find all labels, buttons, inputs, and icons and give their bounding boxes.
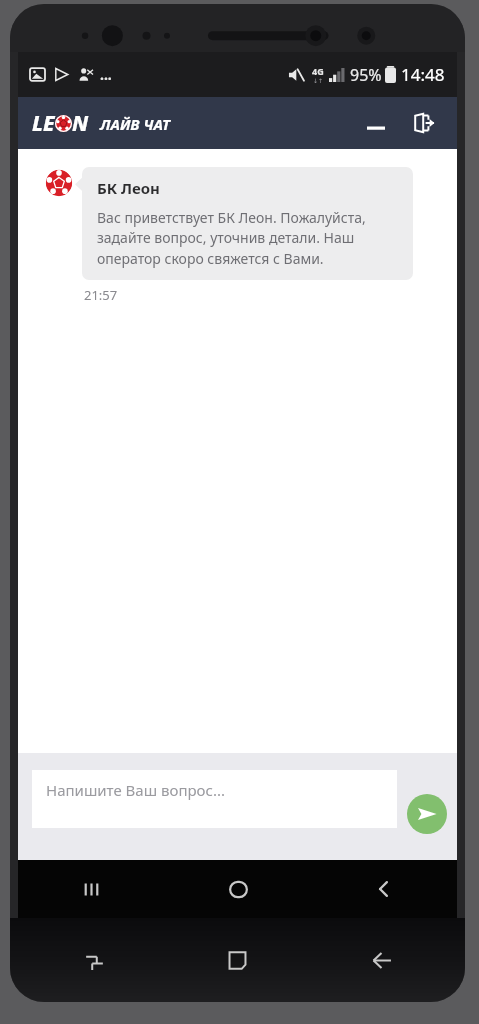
staticText: ↓↑ xyxy=(313,77,324,84)
staticText: БК Леон xyxy=(97,178,160,198)
staticText: 95% xyxy=(350,64,382,86)
staticText: ЛАЙВ ЧАТ xyxy=(100,114,170,134)
staticText: 14:48 xyxy=(401,63,445,86)
staticText: Вас приветствует БК Леон. Пожалуйста, за… xyxy=(97,208,398,269)
staticText: Напишите Ваш вопрос... xyxy=(46,780,225,800)
staticText: N xyxy=(72,109,89,138)
button[interactable]: Recents xyxy=(68,934,120,986)
staticText: LE xyxy=(32,109,55,138)
button[interactable]: Home square xyxy=(211,934,263,986)
button[interactable]: Send message xyxy=(407,794,447,834)
button[interactable]: Home xyxy=(212,863,264,915)
button[interactable]: Back arrow xyxy=(355,934,407,986)
button[interactable]: Minimize xyxy=(355,102,397,144)
staticText: 21:57 xyxy=(84,286,118,304)
staticText: ... xyxy=(100,65,112,84)
button[interactable]: Напишите Ваш вопрос... xyxy=(32,770,397,828)
button[interactable]: Recent apps xyxy=(65,863,117,915)
button[interactable]: Back xyxy=(358,863,410,915)
button[interactable]: Close chat xyxy=(403,102,445,144)
staticText: 4G xyxy=(312,65,324,77)
button[interactable]: БК Леон xyxy=(82,167,413,280)
